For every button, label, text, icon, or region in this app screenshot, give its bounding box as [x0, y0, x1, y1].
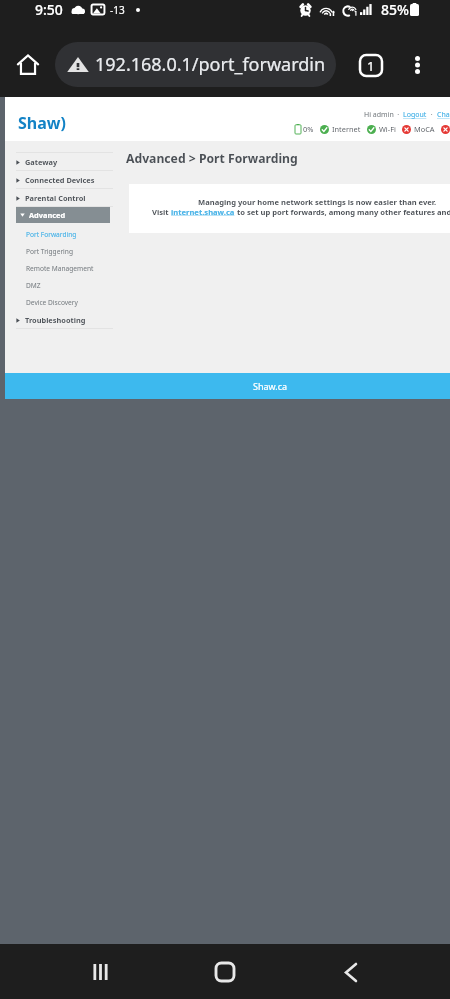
button[interactable]: DMZ [5, 277, 118, 294]
staticText: Advanced [29, 210, 66, 220]
button[interactable]: Device Discovery [5, 294, 118, 311]
staticText: Wi-Fi [379, 124, 396, 134]
button[interactable]: Connected Devices [5, 171, 118, 189]
button[interactable]: Home [199, 946, 251, 998]
staticText: Gateway [25, 157, 58, 167]
button[interactable]: Home [10, 47, 46, 83]
staticText: Connected Devices [25, 175, 95, 185]
staticText: Shaw.ca [253, 380, 288, 392]
staticText: 0% [303, 124, 314, 134]
staticText: Advanced > Port Forwarding [126, 150, 298, 167]
staticText: Device Discovery [26, 298, 78, 307]
staticText: MoCA [414, 124, 435, 134]
staticText: Cha [437, 110, 450, 120]
button[interactable]: Back [325, 946, 377, 998]
staticText: 1 [367, 57, 375, 75]
staticText: Visit [152, 207, 171, 217]
staticText: DMZ [26, 281, 41, 290]
staticText: 192.168.0.1/port_forwardin [95, 52, 326, 77]
staticText: Internet [332, 124, 361, 134]
staticText: Hi admin · [364, 110, 403, 120]
button[interactable]: Advanced [16, 207, 110, 223]
staticText: Shaw) [18, 112, 66, 134]
staticText: to set up port forwards, among many othe… [235, 207, 450, 217]
staticText: Remote Management [26, 264, 94, 273]
staticText: · [427, 110, 437, 120]
button[interactable]: Tabs [353, 47, 389, 83]
button[interactable]: More options [399, 47, 435, 83]
staticText: -13 [110, 3, 125, 17]
staticText: Parental Control [25, 193, 86, 203]
button[interactable]: Troubleshooting [5, 311, 118, 329]
staticText: Logout [403, 110, 427, 120]
button[interactable]: Recent apps [74, 946, 126, 998]
staticText: Port Forwarding [26, 230, 77, 239]
staticText: internet.shaw.ca [171, 207, 235, 217]
button[interactable]: Port Triggering [5, 243, 118, 260]
button[interactable]: Parental Control [5, 189, 118, 207]
staticText: Managing your home network settings is n… [198, 197, 437, 207]
staticText: Port Triggering [26, 247, 73, 256]
button[interactable]: Gateway [5, 153, 118, 171]
staticText: Troubleshooting [25, 315, 86, 325]
staticText: 9:50 [35, 0, 63, 19]
button[interactable]: Port Forwarding [5, 226, 118, 243]
button[interactable]: 192.168.0.1/port_forwardin [55, 42, 336, 87]
button[interactable]: Remote Management [5, 260, 118, 277]
staticText: 85% [381, 0, 409, 19]
